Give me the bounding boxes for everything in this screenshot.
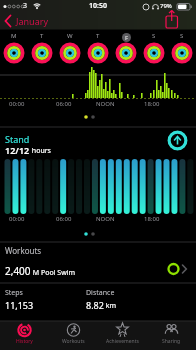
staticText: S — [180, 32, 184, 40]
staticText: M Pool Swim — [31, 268, 76, 278]
button[interactable] — [162, 9, 182, 30]
staticText: km — [104, 301, 117, 311]
staticText: Steps — [5, 288, 23, 298]
button[interactable] — [49, 321, 98, 350]
staticText: 18:00 — [144, 100, 160, 108]
staticText: 11,153 — [5, 299, 34, 311]
staticText: 06:00 — [56, 215, 72, 223]
staticText: 10:50 — [89, 1, 107, 11]
staticText: 2,400 — [5, 264, 31, 278]
staticText: January — [16, 15, 48, 27]
staticText: 18:00 — [144, 215, 160, 223]
button[interactable] — [147, 321, 196, 350]
staticText: F — [125, 34, 129, 42]
staticText: NOON — [96, 100, 115, 108]
staticText: 12/12 — [5, 144, 30, 156]
staticText: hours — [30, 146, 51, 156]
staticText: Sharing — [162, 338, 181, 345]
staticText: T — [96, 32, 100, 40]
staticText: NOON — [96, 215, 115, 223]
button[interactable] — [98, 321, 147, 350]
button[interactable] — [167, 130, 188, 151]
staticText: 79% — [160, 2, 172, 10]
staticText: 00:00 — [9, 215, 25, 223]
button[interactable]: 2,400 — [0, 258, 196, 283]
staticText: 3 — [23, 1, 28, 11]
staticText: Workouts — [62, 338, 85, 345]
staticText: W — [67, 32, 73, 40]
staticText: T — [40, 32, 44, 40]
button[interactable]: January — [2, 12, 62, 30]
staticText: S — [152, 32, 156, 40]
staticText: Stand — [5, 133, 30, 145]
staticText: 00:00 — [9, 100, 25, 108]
staticText: 8.82 — [86, 299, 104, 311]
staticText: Workouts — [5, 245, 42, 256]
staticText: Achievements — [106, 338, 139, 345]
staticText: History — [16, 338, 33, 345]
button[interactable] — [0, 321, 49, 350]
staticText: Distance — [86, 288, 115, 298]
staticText: 06:00 — [56, 100, 72, 108]
staticText: M — [11, 32, 17, 40]
